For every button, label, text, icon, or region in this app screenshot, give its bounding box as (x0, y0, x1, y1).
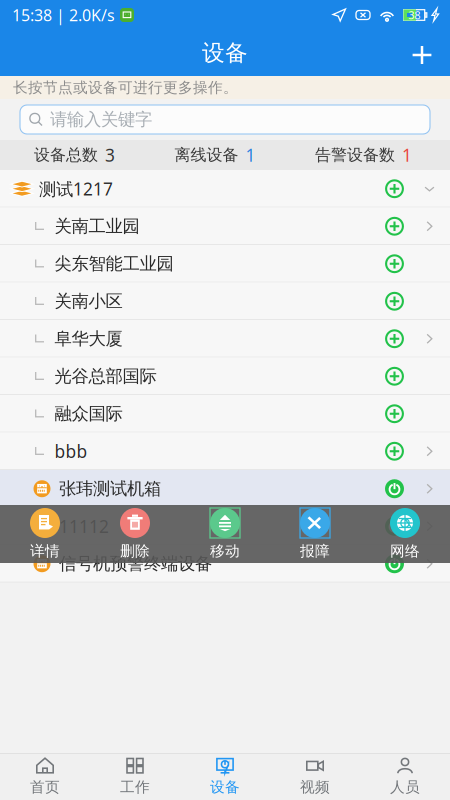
staticText: 张玮测试机箱 (59, 478, 161, 499)
staticText: 详情 (30, 542, 60, 560)
staticText: 信号机预警终端设备 (59, 553, 212, 574)
staticText: 设备 (210, 778, 240, 796)
staticText: 1 (402, 143, 412, 166)
staticText: 1 (245, 143, 255, 166)
staticText: 视频 (300, 778, 330, 796)
staticText: 长按节点或设备可进行更多操作。 (13, 78, 238, 96)
staticText: 11112 (59, 515, 109, 538)
staticText: 报障 (300, 542, 330, 560)
button[interactable]: 人员 (360, 753, 450, 800)
staticText: 设备 (202, 39, 248, 67)
staticText: 工作 (120, 778, 150, 796)
button[interactable]: 尖东智能工业园 (0, 245, 450, 282)
button[interactable]: 信号机预警终端设备 (0, 545, 450, 582)
staticText: 网络 (390, 542, 420, 560)
button[interactable]: Add (397, 30, 450, 76)
staticText: 阜华大厦 (54, 328, 122, 349)
staticText: 3 (105, 143, 115, 166)
button[interactable]: 设备 (180, 753, 270, 800)
staticText: 关南小区 (54, 291, 122, 312)
staticText: 移动 (210, 542, 240, 560)
button[interactable]: 报障 (270, 508, 360, 560)
staticText: 离线设备 (174, 145, 238, 165)
button[interactable]: 阜华大厦 (0, 320, 450, 357)
staticText: 15:38 | 2.0K/s (12, 4, 115, 26)
button[interactable]: 关南小区 (0, 282, 450, 320)
button[interactable]: 光谷总部国际 (0, 357, 450, 395)
staticText: 请输入关键字 (50, 109, 152, 130)
staticText: 设备总数 (34, 145, 98, 165)
button[interactable]: bbb (0, 432, 450, 470)
staticText: 光谷总部国际 (54, 366, 156, 387)
staticText: 38 (408, 8, 420, 22)
button[interactable]: 详情 (0, 508, 90, 560)
button[interactable]: 网络 (360, 508, 450, 560)
staticText: 融众国际 (54, 403, 122, 424)
button[interactable]: 首页 (0, 753, 90, 800)
button[interactable]: 请输入关键字 (20, 105, 430, 134)
staticText: 删除 (120, 542, 150, 560)
button[interactable]: 工作 (90, 753, 180, 800)
button[interactable]: 关南工业园 (0, 207, 450, 245)
button[interactable]: 融众国际 (0, 395, 450, 432)
staticText: 人员 (390, 778, 420, 796)
staticText: 测试1217 (39, 177, 113, 200)
staticText: 告警设备数 (315, 145, 395, 165)
button[interactable]: 移动 (180, 508, 270, 560)
staticText: 首页 (30, 778, 60, 796)
button[interactable]: 测试1217 (0, 170, 450, 207)
staticText: 关南工业园 (54, 216, 139, 237)
staticText: 尖东智能工业园 (54, 253, 173, 274)
button[interactable]: 11112 (0, 507, 450, 545)
button[interactable]: 删除 (90, 508, 180, 560)
staticText: bbb (54, 440, 87, 463)
button[interactable]: 张玮测试机箱 (0, 470, 450, 507)
button[interactable]: 视频 (270, 753, 360, 800)
